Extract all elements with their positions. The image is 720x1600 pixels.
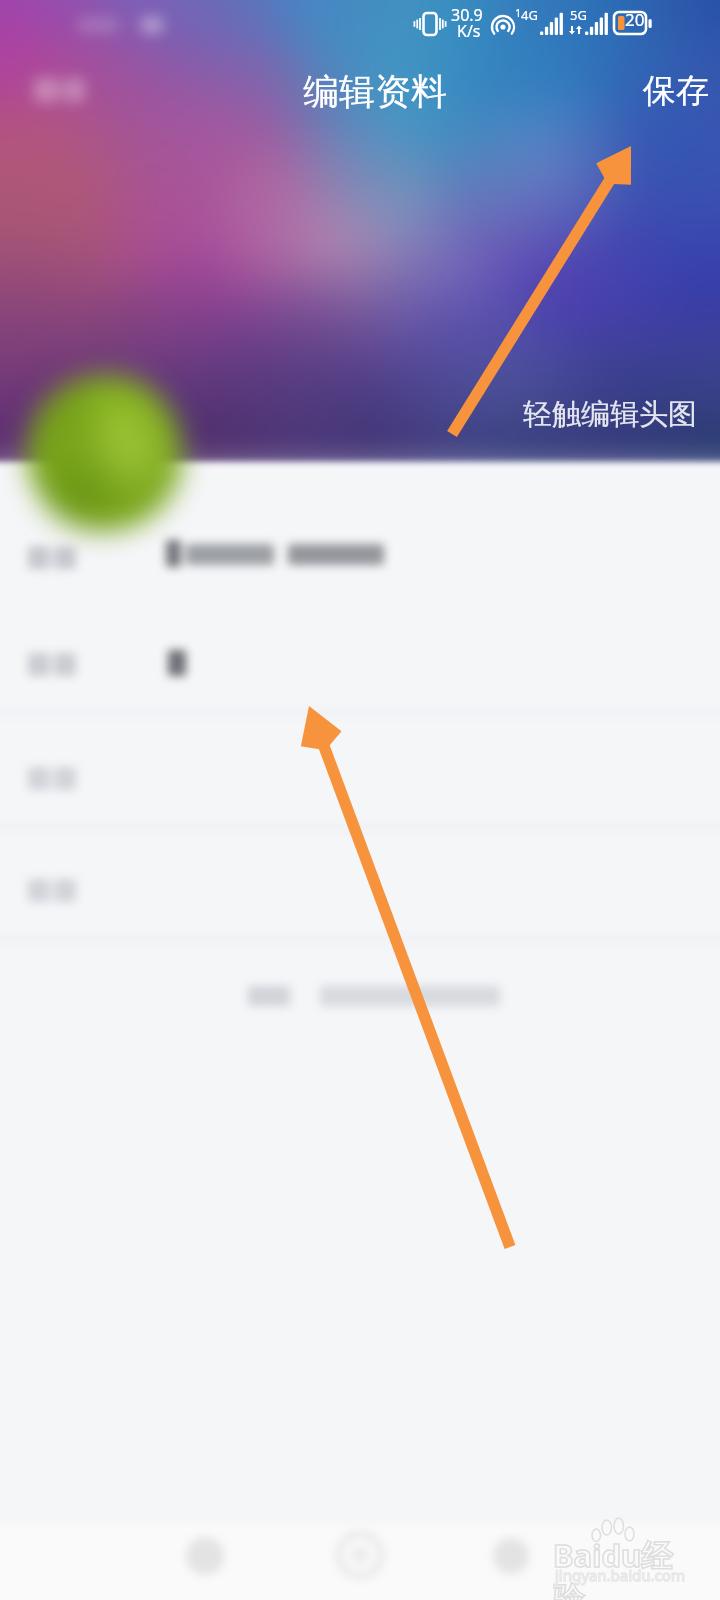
staticText: 编辑资料 bbox=[303, 69, 447, 114]
staticText: 4G bbox=[521, 6, 538, 24]
staticText: 轻触编辑头图 bbox=[523, 396, 697, 433]
staticText: jingyan.baidu.com bbox=[555, 1565, 685, 1585]
staticText: 20 bbox=[625, 8, 645, 31]
staticText: 1 bbox=[515, 5, 522, 20]
staticText: K/s bbox=[457, 20, 481, 42]
staticText: Baidu经验 bbox=[553, 1534, 698, 1600]
staticText: 30.9 bbox=[451, 4, 483, 26]
button[interactable]: 保存 bbox=[621, 54, 720, 128]
staticText: 5G bbox=[570, 6, 587, 24]
staticText: 保存 bbox=[643, 70, 709, 112]
